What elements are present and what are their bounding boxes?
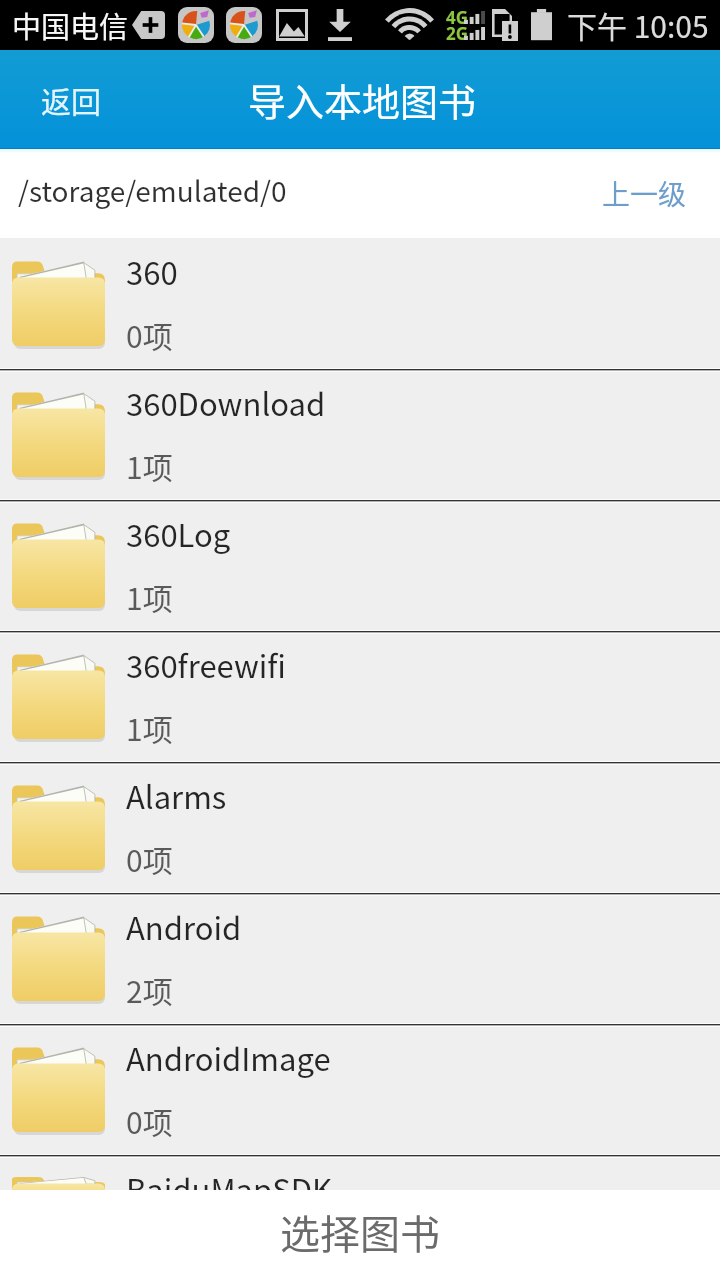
- staticText: 返回: [41, 78, 101, 121]
- button[interactable]: BaiduMapSDK: [0, 1158, 720, 1192]
- staticText: Android: [126, 904, 242, 949]
- staticText: Alarms: [126, 773, 227, 818]
- staticText: 0项: [126, 837, 173, 880]
- staticText: 1项: [126, 575, 173, 618]
- staticText: /storage/emulated/0: [18, 170, 287, 211]
- staticText: 360Log: [126, 511, 231, 556]
- staticText: 上一级: [602, 173, 687, 214]
- button[interactable]: 360freewifi: [0, 634, 720, 761]
- staticText: AndroidImage: [126, 1035, 331, 1080]
- button[interactable]: Android: [0, 896, 720, 1023]
- staticText: 1项: [126, 706, 173, 749]
- staticText: 4G: [446, 6, 469, 29]
- staticText: 选择图书: [280, 1203, 440, 1261]
- button[interactable]: Alarms: [0, 765, 720, 892]
- staticText: 0项: [126, 1099, 173, 1142]
- staticText: 360freewifi: [126, 642, 286, 687]
- staticText: 导入本地图书: [248, 72, 477, 127]
- staticText: 1项: [126, 444, 173, 487]
- staticText: 中国电信: [12, 4, 129, 46]
- button[interactable]: 360: [0, 241, 720, 368]
- staticText: 2G: [446, 22, 469, 45]
- staticText: 2项: [126, 968, 173, 1011]
- staticText: 360: [126, 249, 178, 294]
- staticText: 下午 10:05: [567, 3, 709, 46]
- button[interactable]: AndroidImage: [0, 1027, 720, 1154]
- button[interactable]: 360Download: [0, 372, 720, 499]
- staticText: 0项: [126, 313, 173, 356]
- button[interactable]: 选择图书: [0, 1190, 720, 1280]
- staticText: 360Download: [126, 380, 326, 425]
- button[interactable]: 上一级: [572, 153, 720, 234]
- button[interactable]: 返回: [0, 56, 131, 143]
- button[interactable]: 360Log: [0, 503, 720, 630]
- staticText: BaiduMapSDK: [126, 1166, 333, 1192]
